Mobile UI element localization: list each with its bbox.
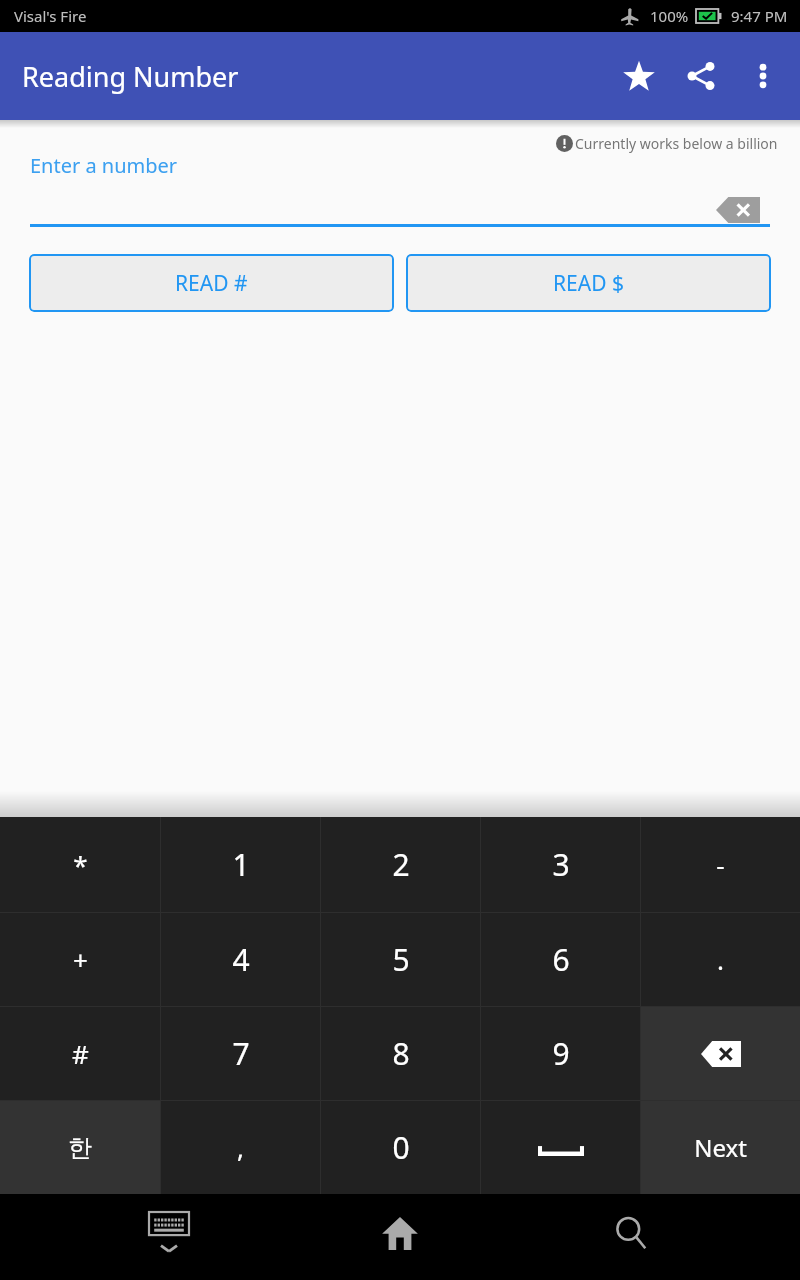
button[interactable]: * [0, 817, 160, 912]
button[interactable]: Backspace [641, 1007, 800, 1100]
button[interactable]: 0 [321, 1101, 480, 1194]
button[interactable]: READ $ [406, 254, 771, 312]
staticText: Next [694, 1131, 747, 1164]
button[interactable]: , [161, 1101, 320, 1194]
button[interactable]: Home [284, 1194, 515, 1272]
button[interactable]: 8 [321, 1007, 480, 1100]
button[interactable]: More options [732, 45, 794, 107]
staticText: # [72, 1036, 89, 1071]
button[interactable]: 4 [161, 913, 320, 1006]
staticText: 7 [232, 1033, 250, 1074]
staticText: Enter a number [30, 152, 178, 179]
staticText: 5 [392, 939, 410, 980]
staticText: 2 [392, 844, 410, 885]
button[interactable]: 6 [481, 913, 640, 1006]
staticText: 4 [232, 939, 250, 980]
button[interactable]: READ # [29, 254, 394, 312]
staticText: * [73, 847, 88, 882]
staticText: 100% [650, 6, 689, 26]
staticText: 9 [552, 1033, 570, 1074]
staticText: + [73, 942, 88, 977]
staticText: Visal's Fire [14, 6, 87, 26]
staticText: 8 [392, 1033, 410, 1074]
button[interactable]: Favorite [608, 45, 670, 107]
staticText: 3 [552, 844, 570, 885]
button[interactable]: 5 [321, 913, 480, 1006]
staticText: READ # [175, 269, 248, 298]
staticText: READ $ [553, 269, 624, 298]
staticText: 6 [552, 939, 570, 980]
button[interactable]: 2 [321, 817, 480, 912]
button[interactable]: . [641, 913, 800, 1006]
staticText: Reading Number [22, 58, 239, 95]
button[interactable]: 1 [161, 817, 320, 912]
staticText: 한 [68, 1133, 92, 1163]
staticText: - [716, 847, 725, 882]
staticText: Currently works below a billion [575, 134, 778, 153]
button[interactable]: - [641, 817, 800, 912]
staticText: , [237, 1130, 244, 1165]
button[interactable]: 7 [161, 1007, 320, 1100]
staticText: 0 [392, 1127, 410, 1168]
staticText: . [717, 942, 724, 977]
button[interactable]: Space [481, 1101, 640, 1194]
button[interactable]: 9 [481, 1007, 640, 1100]
staticText: 9:47 PM [731, 6, 788, 26]
button[interactable]: Search [515, 1194, 746, 1272]
button[interactable]: + [0, 913, 160, 1006]
staticText: 1 [232, 844, 250, 885]
button[interactable]: Clear text [712, 194, 764, 226]
button[interactable]: 한 [0, 1101, 160, 1194]
button[interactable]: Next [641, 1101, 800, 1194]
button[interactable]: Share [670, 45, 732, 107]
button[interactable]: 3 [481, 817, 640, 912]
button[interactable]: Hide keyboard [54, 1194, 284, 1272]
button[interactable]: # [0, 1007, 160, 1100]
